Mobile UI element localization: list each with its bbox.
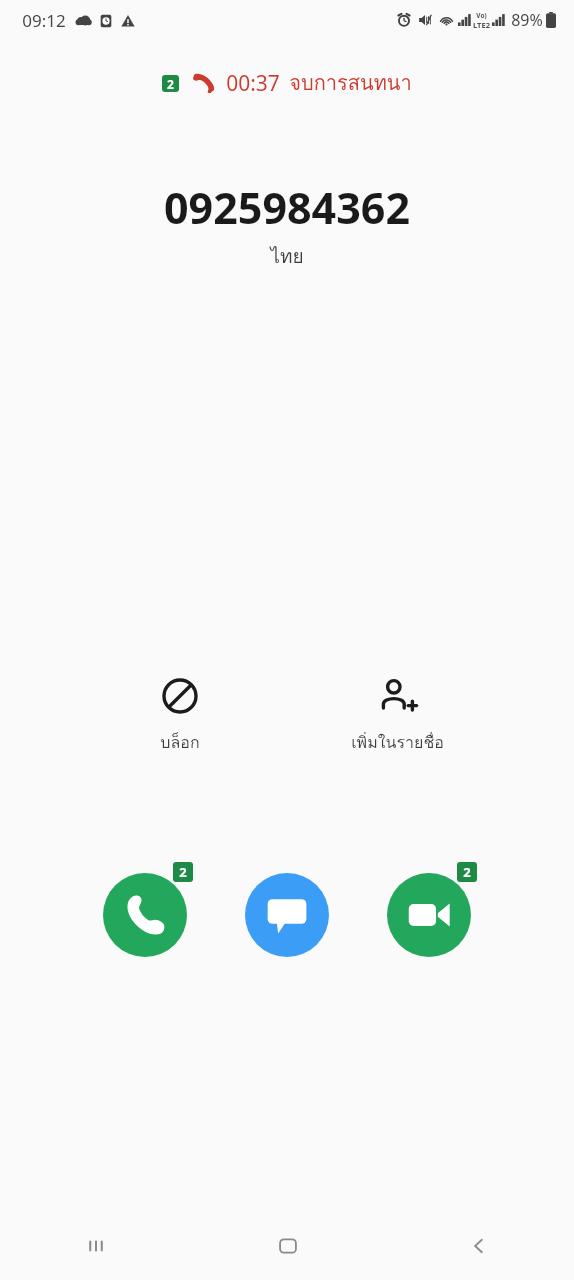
button[interactable]: Message — [240, 862, 335, 957]
staticText: 0925984362 — [164, 178, 410, 237]
button[interactable]: Video call — [382, 862, 477, 957]
staticText: ไทย — [270, 241, 304, 271]
button[interactable]: Back — [383, 1212, 574, 1280]
staticText: 89% — [511, 9, 543, 31]
button[interactable]: Recent apps — [0, 1212, 192, 1280]
staticText: จบการสนทนา — [289, 67, 412, 99]
staticText: 2 — [167, 76, 174, 92]
button[interactable]: Call — [98, 862, 193, 957]
staticText: LTE2 — [473, 20, 490, 30]
staticText: 09:12 — [22, 9, 66, 32]
staticText: 2 — [179, 863, 187, 881]
staticText: 2 — [463, 863, 471, 881]
button[interactable]: บล็อก — [120, 672, 240, 759]
staticText: Vo) — [476, 11, 487, 20]
button[interactable]: เพิ่มในรายชื่อ — [322, 672, 472, 759]
staticText: เพิ่มในรายชื่อ — [351, 730, 444, 755]
staticText: บล็อก — [160, 730, 200, 755]
button[interactable]: Home — [192, 1212, 383, 1280]
staticText: 00:37 — [226, 69, 280, 98]
